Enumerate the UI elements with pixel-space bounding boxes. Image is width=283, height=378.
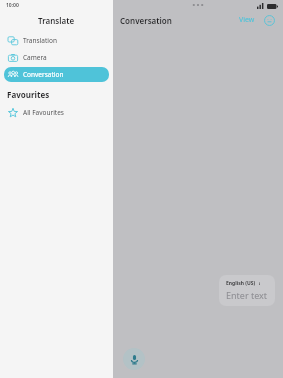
staticText: Camera bbox=[23, 53, 47, 62]
button[interactable]: All Favourites bbox=[4, 105, 109, 120]
staticText: Conversation bbox=[23, 70, 64, 79]
staticText: English (US) bbox=[226, 280, 256, 287]
button[interactable]: Translation bbox=[4, 33, 109, 48]
staticText: 10:00 bbox=[6, 2, 19, 9]
staticText: All Favourites bbox=[23, 108, 64, 117]
staticText: Translate bbox=[38, 15, 75, 26]
staticText: Enter text bbox=[226, 289, 268, 301]
button[interactable]: Conversation bbox=[4, 67, 109, 82]
button[interactable]: View bbox=[237, 14, 257, 26]
button[interactable]: English (US) bbox=[219, 275, 275, 306]
staticText: Translation bbox=[23, 36, 57, 45]
staticText: Conversation bbox=[120, 15, 172, 26]
button[interactable]: Camera bbox=[4, 50, 109, 65]
staticText: View bbox=[239, 15, 255, 25]
staticText: Favourites bbox=[7, 89, 50, 100]
button[interactable]: Microphone bbox=[123, 348, 145, 370]
button[interactable]: More options bbox=[263, 14, 276, 27]
